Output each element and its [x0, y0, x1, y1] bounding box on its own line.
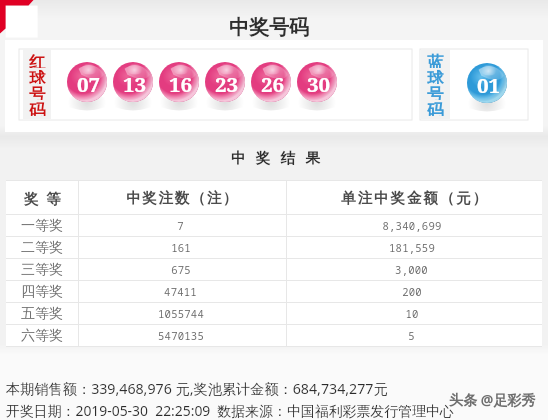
staticText: 三等奖 — [21, 261, 63, 279]
staticText: 球 — [29, 68, 46, 84]
staticText: 5470135 — [158, 329, 204, 343]
staticText: 开奖日期：2019-05-30 22:25:09 数据来源：中国福利彩票发行管理… — [6, 401, 454, 420]
staticText: 红 — [29, 52, 46, 68]
staticText: 号 — [29, 84, 46, 100]
staticText: 200 — [402, 285, 422, 299]
staticText: 47411 — [164, 285, 197, 299]
staticText: 码 — [427, 100, 444, 116]
staticText: 23 — [215, 70, 239, 98]
staticText: 球 — [427, 68, 444, 84]
staticText: 5 — [408, 329, 415, 343]
staticText: 3,000 — [395, 263, 428, 277]
staticText: 01 — [477, 71, 501, 99]
staticText: 号 — [427, 84, 444, 100]
staticText: 30 — [307, 70, 331, 98]
staticText: 四等奖 — [21, 283, 63, 301]
staticText: 单注中奖金额（元） — [341, 189, 489, 207]
staticText: 头条 @足彩秀 — [449, 390, 536, 409]
staticText: 16 — [169, 70, 193, 98]
staticText: 中 奖 结 果 — [231, 147, 324, 167]
staticText: 码 — [29, 100, 46, 116]
button[interactable]: 彩票开奖结果角标 — [0, 0, 42, 42]
staticText: 675 — [171, 263, 191, 277]
button[interactable]: 红球号码 07 13 16 23 26 30 — [19, 49, 412, 120]
staticText: 1055744 — [158, 307, 204, 321]
staticText: 26 — [261, 70, 285, 98]
staticText: 13 — [123, 70, 147, 98]
staticText: 10 — [405, 307, 419, 321]
staticText: 二等奖 — [21, 239, 63, 257]
button[interactable]: 四等奖 — [6, 281, 542, 302]
staticText: 中奖注数（注） — [126, 189, 239, 207]
staticText: 8,340,699 — [382, 219, 442, 233]
staticText: 中奖号码 — [229, 15, 309, 40]
staticText: 一等奖 — [21, 217, 63, 235]
staticText: 六等奖 — [21, 327, 63, 345]
button[interactable]: 二等奖 — [6, 237, 542, 258]
staticText: 161 — [171, 241, 191, 255]
staticText: 奖 等 — [24, 188, 61, 208]
button[interactable]: 蓝球号码 01 — [420, 49, 528, 120]
button[interactable]: 一等奖 — [6, 215, 542, 236]
staticText: 本期销售额：339,468,976 元,奖池累计金额：684,734,277元 — [6, 379, 388, 398]
staticText: 07 — [77, 70, 101, 98]
button[interactable]: 五等奖 — [6, 303, 542, 324]
staticText: 五等奖 — [21, 305, 63, 323]
button[interactable]: 六等奖 — [6, 325, 542, 346]
staticText: 7 — [177, 219, 184, 233]
staticText: 181,559 — [389, 241, 435, 255]
button[interactable]: 三等奖 — [6, 259, 542, 280]
staticText: 蓝 — [427, 52, 444, 68]
